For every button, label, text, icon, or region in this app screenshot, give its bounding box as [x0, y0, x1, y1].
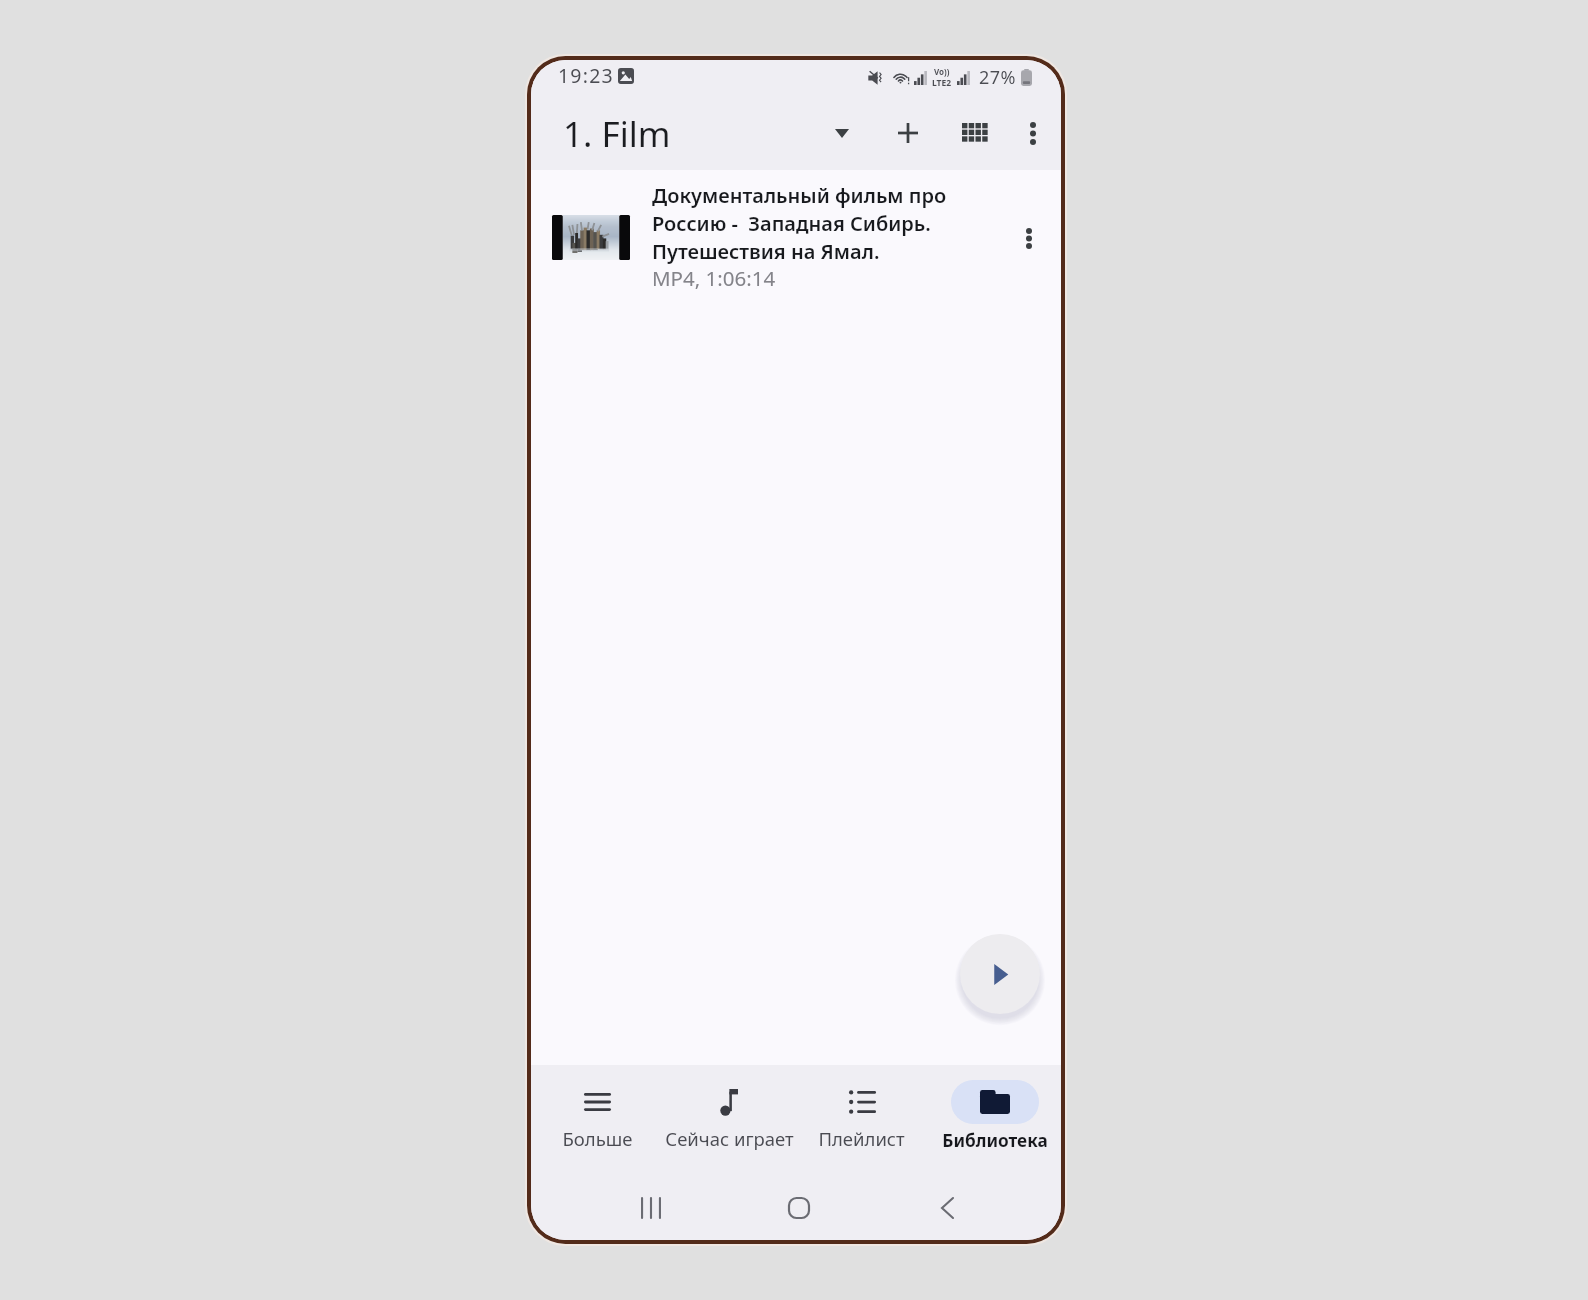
- staticText: Сейчас играет: [665, 1126, 794, 1151]
- button[interactable]: Больше: [531, 1065, 663, 1165]
- button[interactable]: Home: [777, 1186, 821, 1230]
- staticText: Плейлист: [818, 1126, 905, 1151]
- button[interactable]: Сейчас играет: [663, 1065, 795, 1165]
- button[interactable]: Sort order: [820, 111, 864, 155]
- staticText: 19:23: [558, 62, 614, 89]
- button[interactable]: Grid view: [953, 111, 997, 155]
- button[interactable]: Библиотека: [928, 1065, 1061, 1165]
- staticText: LTE2: [932, 77, 952, 89]
- staticText: 1. Film: [563, 110, 671, 158]
- button[interactable]: More options: [1011, 111, 1055, 155]
- button[interactable]: Документальный фильм про Россию - Западн…: [531, 170, 1061, 298]
- button[interactable]: Back: [925, 1186, 969, 1230]
- staticText: Документальный фильм про Россию - Западн…: [652, 182, 947, 264]
- button[interactable]: Item options: [1005, 214, 1053, 262]
- button[interactable]: Плейлист: [795, 1065, 928, 1165]
- button[interactable]: Recents: [629, 1186, 673, 1230]
- staticText: MP4, 1:06:14: [652, 264, 776, 292]
- button[interactable]: Add: [886, 111, 930, 155]
- staticText: 27%: [979, 65, 1016, 90]
- button[interactable]: Play: [960, 934, 1040, 1014]
- staticText: Больше: [562, 1126, 633, 1151]
- staticText: Библиотека: [942, 1129, 1048, 1152]
- staticText: Vo)): [934, 66, 950, 77]
